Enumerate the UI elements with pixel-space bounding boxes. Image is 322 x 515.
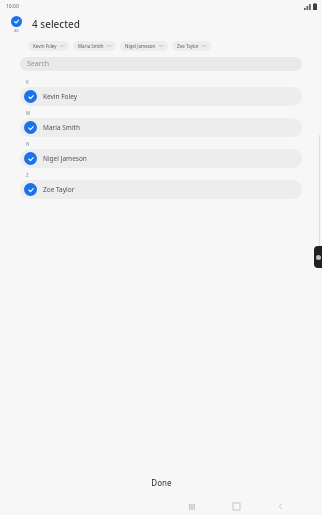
staticText: Nigel Jameson <box>125 43 156 49</box>
staticText: Kevin Foley <box>43 92 78 101</box>
button[interactable]: Maria Smith <box>73 41 116 51</box>
button[interactable]: Back <box>267 498 293 515</box>
button[interactable]: Zoe Taylor <box>20 180 302 199</box>
button[interactable]: Nigel Jameson <box>120 41 168 51</box>
button[interactable]: Done <box>137 473 186 492</box>
button[interactable]: Zoe Taylor <box>172 41 211 51</box>
staticText: 4 selected <box>32 17 81 31</box>
button[interactable]: Kevin Foley <box>28 41 69 51</box>
button[interactable]: Drag handle <box>314 246 322 268</box>
staticText: N <box>26 141 30 147</box>
staticText: Zoe Taylor <box>177 43 199 49</box>
staticText: K <box>26 79 29 85</box>
staticText: Z <box>26 172 29 178</box>
button[interactable]: Home <box>223 498 249 515</box>
button[interactable]: Nigel Jameson <box>20 149 302 168</box>
button[interactable]: Recents <box>179 498 205 515</box>
staticText: Done <box>151 477 172 488</box>
button[interactable]: Kevin Foley <box>20 87 302 106</box>
button[interactable]: Select all <box>4 16 28 33</box>
button[interactable]: Search <box>20 57 302 71</box>
staticText: Nigel Jameson <box>43 154 87 163</box>
staticText: Zoe Taylor <box>43 185 75 194</box>
staticText: Maria Smith <box>78 43 104 49</box>
button[interactable]: Maria Smith <box>20 118 302 137</box>
staticText: Kevin Foley <box>33 43 57 49</box>
staticText: Search <box>27 59 50 69</box>
staticText: All <box>14 28 19 33</box>
staticText: Maria Smith <box>43 123 80 132</box>
staticText: M <box>26 110 31 116</box>
staticText: 10:00 <box>6 3 19 10</box>
